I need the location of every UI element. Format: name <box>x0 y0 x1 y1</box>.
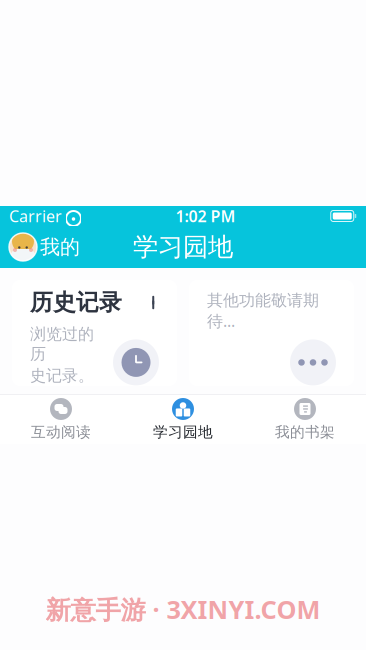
staticText: 学习园地 <box>153 423 213 441</box>
staticText: 史记录。 <box>30 366 94 385</box>
button[interactable]: 学习园地 <box>122 395 244 444</box>
staticText: 其他功能敬请期待... <box>207 290 319 331</box>
button[interactable]: 历史记录 <box>12 280 177 386</box>
staticText: Carrier <box>9 205 62 227</box>
staticText: 新意手游 · 3XINYI.COM <box>45 592 320 626</box>
staticText: 我的 <box>40 235 80 259</box>
staticText: 学习园地 <box>133 231 233 262</box>
staticText: 浏览过的历 <box>30 324 94 364</box>
staticText: 1:02 PM <box>175 205 235 227</box>
button[interactable]: 互动阅读 <box>0 395 122 444</box>
staticText: 历史记录 <box>30 289 122 316</box>
button[interactable]: 我的 <box>0 228 89 266</box>
button[interactable]: 其他功能敬请期待... <box>189 280 354 386</box>
button[interactable]: 我的书架 <box>244 395 366 444</box>
staticText: 互动阅读 <box>31 423 91 441</box>
staticText: 我的书架 <box>275 423 335 441</box>
